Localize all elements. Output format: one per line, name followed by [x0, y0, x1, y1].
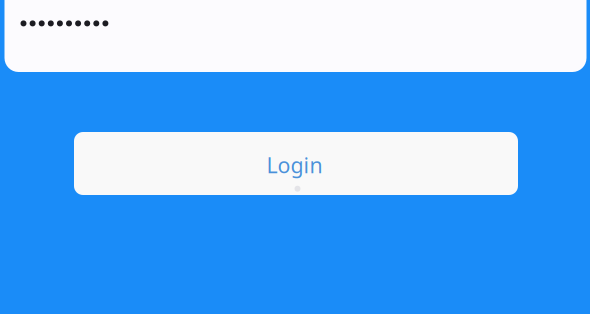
button[interactable]: Password: [4, 0, 586, 72]
staticText: Login: [266, 151, 322, 179]
button[interactable]: Login: [74, 132, 518, 195]
